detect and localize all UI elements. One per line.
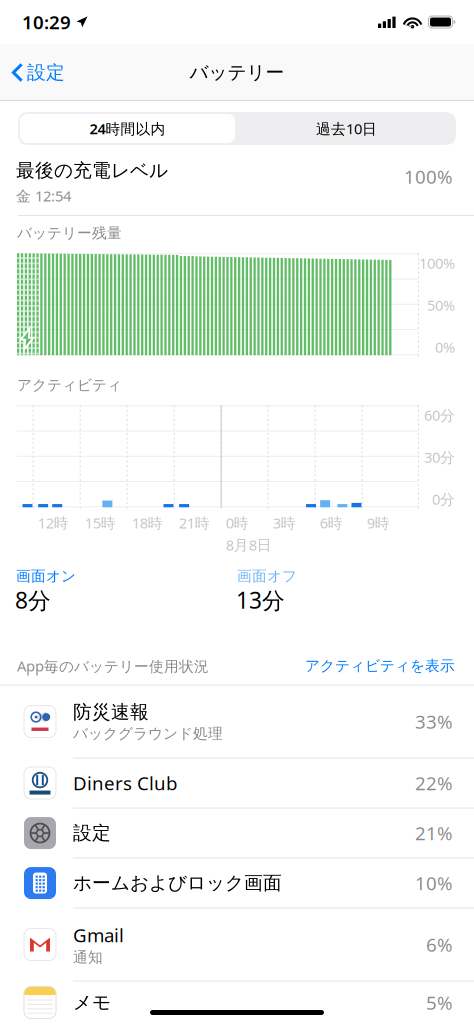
staticText: 21% — [415, 821, 453, 845]
staticText: 12時 — [38, 513, 69, 532]
staticText: 50% — [427, 295, 455, 315]
staticText: 8月8日 — [226, 535, 272, 554]
staticText: バッテリー残量 — [17, 224, 122, 242]
button[interactable]: 防災速報 — [0, 686, 474, 759]
staticText: 60分 — [424, 405, 455, 425]
button[interactable]: Gmail — [0, 909, 474, 982]
staticText: バックグラウンド処理 — [73, 724, 223, 742]
staticText: 100% — [419, 253, 455, 273]
staticText: 3時 — [273, 513, 296, 532]
staticText: 0分 — [432, 489, 455, 509]
staticText: 設定 — [73, 822, 111, 844]
staticText: 33% — [415, 709, 453, 734]
staticText: Gmail — [73, 923, 124, 947]
staticText: 0% — [435, 337, 455, 357]
staticText: 画面オン — [16, 567, 76, 585]
staticText: 15時 — [85, 513, 116, 532]
staticText: 画面オフ — [237, 567, 297, 585]
button[interactable]: 設定 — [0, 52, 65, 93]
button[interactable]: 過去10日 — [237, 112, 456, 145]
staticText: 防災速報 — [73, 701, 149, 723]
staticText: 過去10日 — [316, 119, 377, 138]
button[interactable]: 24時間以内 — [18, 112, 237, 145]
staticText: メモ — [73, 991, 111, 1014]
staticText: 8分 — [15, 585, 51, 615]
staticText: 30分 — [424, 447, 455, 467]
staticText: 5% — [426, 990, 453, 1015]
staticText: 100% — [404, 164, 453, 189]
staticText: 最後の充電レベル — [16, 159, 168, 182]
staticText: 24時間以内 — [89, 119, 165, 138]
staticText: 設定 — [27, 61, 65, 84]
staticText: アクティビティ — [17, 376, 122, 394]
staticText: 通知 — [73, 948, 103, 966]
staticText: 22% — [415, 771, 453, 795]
staticText: 金 12:54 — [16, 186, 71, 205]
staticText: 6時 — [320, 513, 343, 532]
staticText: ホームおよびロック画面 — [73, 872, 282, 894]
staticText: 0時 — [226, 513, 249, 532]
button[interactable]: アクティビティを表示 — [305, 657, 455, 675]
staticText: 6% — [426, 932, 453, 957]
staticText: 10% — [415, 871, 453, 895]
staticText: 13分 — [236, 585, 285, 615]
staticText: 9時 — [367, 513, 390, 532]
staticText: 10:29 — [22, 10, 71, 34]
staticText: バッテリー — [189, 61, 284, 84]
button[interactable]: 設定 — [0, 809, 474, 859]
staticText: 21時 — [179, 513, 210, 532]
button[interactable]: Diners Club — [0, 759, 474, 809]
button[interactable]: ホームおよびロック画面 — [0, 859, 474, 909]
staticText: App毎のバッテリー使用状況 — [17, 656, 209, 676]
staticText: Diners Club — [73, 771, 177, 795]
staticText: アクティビティを表示 — [305, 657, 455, 675]
button[interactable]: メモ — [0, 982, 474, 1024]
staticText: 18時 — [132, 513, 163, 532]
